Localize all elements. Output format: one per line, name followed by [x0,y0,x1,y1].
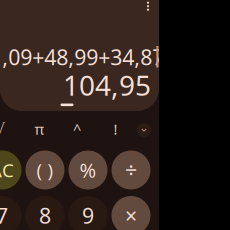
button[interactable]: √ [0,118,11,140]
button[interactable]: ^ [66,118,88,140]
button[interactable]: × [111,196,150,230]
staticText: AC [0,158,14,182]
button[interactable]: 9 [68,196,107,230]
staticText: × [125,201,137,230]
button[interactable]: ! [104,118,126,140]
button[interactable]: More options [140,0,156,15]
staticText: 8 [39,201,51,230]
button[interactable]: π [28,118,50,140]
button[interactable]: ( ) [25,150,64,189]
staticText: % [79,157,96,183]
staticText: √ [0,121,4,137]
staticText: 1,09+48,99+34,87 [0,43,164,71]
staticText: 7 [0,201,8,230]
button[interactable]: 8 [25,196,64,230]
button[interactable]: 7 [0,196,21,230]
button[interactable]: AC [0,150,21,189]
staticText: ! [113,119,117,139]
button[interactable]: % [68,150,107,189]
staticText: ÷ [125,156,137,184]
button[interactable]: ÷ [111,150,150,189]
staticText: 9 [82,201,94,230]
staticText: π [34,119,44,139]
staticText: 104,95 [63,66,151,104]
button[interactable]: Show more functions [133,119,155,141]
staticText: ( ) [36,158,53,182]
staticText: ^ [73,119,81,139]
